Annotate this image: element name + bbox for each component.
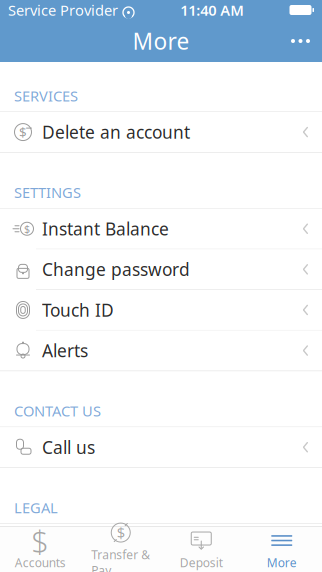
button[interactable]: Deposit [161, 527, 241, 572]
staticText: $ [117, 523, 125, 542]
staticText: Change password [42, 258, 190, 281]
staticText: SERVICES [14, 86, 78, 105]
staticText: Alerts [42, 339, 88, 362]
button[interactable]: Touch ID [0, 290, 322, 330]
staticText: LEGAL [14, 498, 58, 517]
staticText: $ [24, 222, 30, 236]
staticText: Touch ID [42, 298, 114, 321]
staticText: CONTACT US [14, 401, 101, 421]
button[interactable]: More [241, 527, 322, 572]
staticText: More [267, 554, 297, 570]
button[interactable]: Call us [0, 427, 322, 467]
staticText: 11:40 AM [180, 0, 244, 20]
staticText: Delete an account [42, 121, 190, 144]
staticText: Accounts [15, 554, 66, 570]
staticText: Terms & conditions [42, 532, 197, 555]
staticText: Instant Balance [42, 217, 169, 240]
staticText: $ [31, 520, 49, 561]
staticText: Service Provider [8, 0, 118, 20]
staticText: $ [19, 123, 27, 141]
button[interactable]: $ [0, 527, 80, 572]
staticText: Transfer & Pay [91, 547, 150, 572]
staticText: Call us [42, 436, 95, 459]
button[interactable]: $ [0, 524, 322, 564]
button[interactable]: $ [0, 112, 322, 152]
button[interactable]: $ [80, 527, 161, 572]
button[interactable]: More options [279, 20, 322, 62]
staticText: More [132, 26, 189, 56]
button[interactable]: $ [0, 209, 322, 249]
button[interactable]: Alerts [0, 331, 322, 371]
staticText: SETTINGS [14, 183, 81, 202]
staticText: Deposit [180, 554, 223, 570]
button[interactable]: Change password [0, 249, 322, 289]
